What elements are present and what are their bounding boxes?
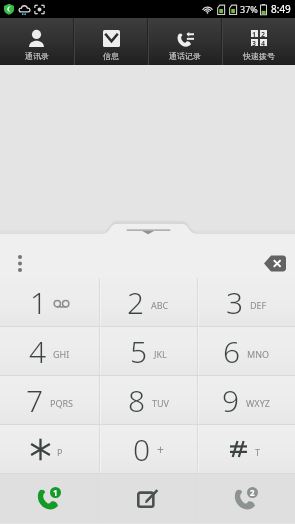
button[interactable]: 5 bbox=[99, 327, 197, 375]
button[interactable]: 1 bbox=[223, 18, 295, 65]
staticText: 3 bbox=[252, 39, 257, 46]
staticText: 1 bbox=[252, 30, 257, 37]
button[interactable]: 通讯录 bbox=[0, 18, 73, 65]
staticText: 8 bbox=[128, 380, 146, 421]
staticText: T bbox=[255, 446, 261, 458]
staticText: 通话记录 bbox=[169, 51, 201, 61]
button[interactable]: 0 bbox=[99, 425, 197, 473]
staticText: JKL bbox=[154, 348, 167, 360]
staticText: MNO bbox=[247, 348, 270, 360]
staticText: WXYZ bbox=[246, 397, 270, 409]
button[interactable]: Call with SIM 1 bbox=[0, 474, 97, 523]
staticText: 8:49 bbox=[271, 2, 291, 16]
button[interactable]: 7 bbox=[0, 376, 99, 424]
staticText: 3 bbox=[226, 282, 244, 323]
staticText: 4 bbox=[261, 39, 266, 46]
button[interactable]: P bbox=[0, 425, 99, 473]
button[interactable]: Add contact bbox=[98, 474, 196, 523]
staticText: 1 bbox=[30, 282, 48, 323]
button[interactable]: 2 bbox=[99, 278, 197, 326]
button[interactable]: 通话记录 bbox=[149, 18, 221, 65]
button[interactable]: Call with SIM 2 bbox=[197, 474, 295, 523]
staticText: 9 bbox=[222, 380, 240, 421]
staticText: 6 bbox=[223, 331, 241, 372]
button[interactable]: 4 bbox=[0, 327, 99, 375]
button[interactable]: T bbox=[197, 425, 295, 473]
button[interactable]: 8 bbox=[99, 376, 197, 424]
button[interactable]: Backspace bbox=[261, 250, 289, 276]
staticText: GHI bbox=[53, 348, 70, 360]
staticText: 快速拨号 bbox=[243, 51, 275, 61]
button[interactable]: More options bbox=[9, 249, 31, 277]
staticText: ABC bbox=[151, 299, 169, 311]
staticText: 37% bbox=[240, 3, 258, 15]
staticText: + bbox=[157, 441, 164, 457]
button[interactable]: 9 bbox=[197, 376, 295, 424]
button[interactable]: 信息 bbox=[75, 18, 147, 65]
staticText: 5 bbox=[130, 331, 148, 372]
button[interactable]: 1 bbox=[0, 278, 99, 326]
staticText: 信息 bbox=[103, 51, 119, 61]
staticText: P bbox=[57, 446, 63, 458]
staticText: PQRS bbox=[50, 397, 74, 409]
staticText: TUV bbox=[152, 397, 169, 409]
staticText: DEF bbox=[250, 299, 267, 311]
staticText: 2 bbox=[127, 282, 145, 323]
staticText: 通讯录 bbox=[25, 51, 49, 61]
staticText: 7 bbox=[26, 380, 44, 421]
staticText: 2 bbox=[261, 30, 266, 37]
staticText: 4 bbox=[29, 331, 47, 372]
button[interactable]: 6 bbox=[197, 327, 295, 375]
button[interactable]: 3 bbox=[197, 278, 295, 326]
staticText: 0 bbox=[133, 429, 151, 470]
staticText: 2 bbox=[250, 487, 255, 498]
staticText: 1 bbox=[53, 487, 58, 498]
